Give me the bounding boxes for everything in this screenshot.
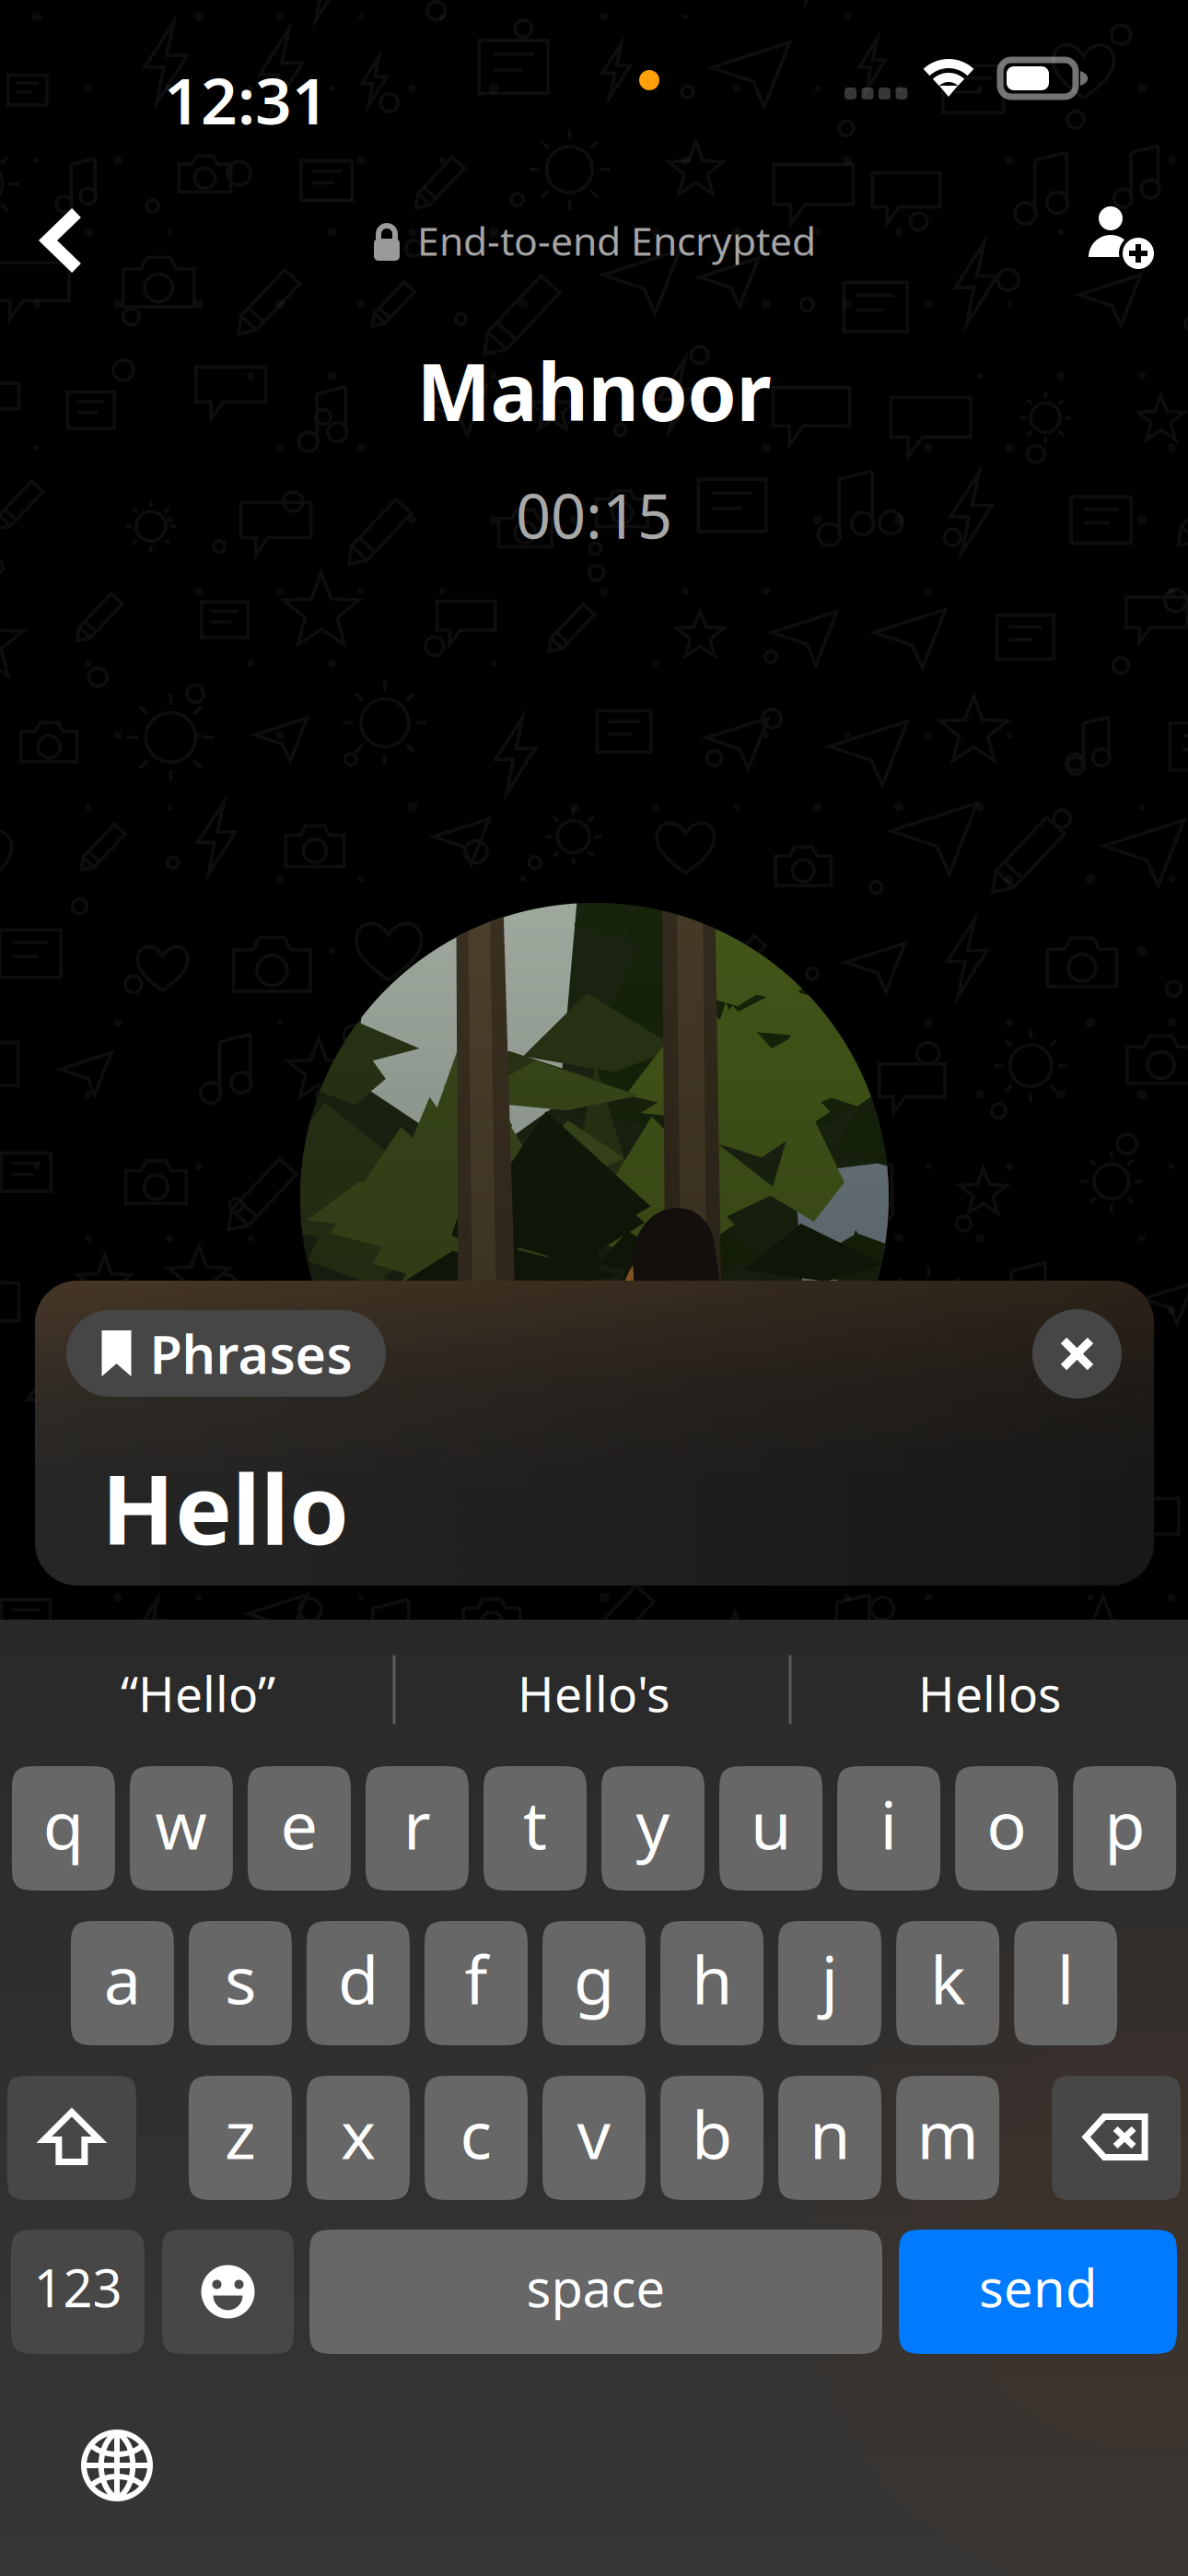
button[interactable]: “Hello” xyxy=(0,1620,396,1766)
button[interactable]: Hello's xyxy=(396,1620,792,1766)
staticText: h xyxy=(692,1934,732,2023)
button[interactable]: Close xyxy=(1032,1309,1122,1399)
staticText: x xyxy=(341,2089,376,2177)
button[interactable]: m xyxy=(896,2076,999,2200)
button[interactable]: z xyxy=(189,2076,292,2200)
staticText: m xyxy=(917,2089,979,2177)
button[interactable]: d xyxy=(307,1921,410,2045)
button[interactable]: k xyxy=(896,1921,999,2045)
staticText: e xyxy=(280,1780,318,1868)
staticText: b xyxy=(692,2089,732,2177)
button[interactable]: t xyxy=(483,1766,587,1891)
button[interactable]: r xyxy=(366,1766,469,1891)
button[interactable]: p xyxy=(1073,1766,1176,1891)
staticText: Mahnoor xyxy=(417,338,771,443)
button[interactable]: o xyxy=(955,1766,1058,1891)
button[interactable]: g xyxy=(542,1921,646,2045)
button[interactable]: space xyxy=(309,2230,882,2354)
button[interactable]: w xyxy=(130,1766,233,1891)
button[interactable]: l xyxy=(1014,1921,1117,2045)
staticText: Phrases xyxy=(150,1318,352,1388)
staticText: z xyxy=(225,2089,256,2177)
staticText: i xyxy=(880,1780,898,1868)
button[interactable]: Hellos xyxy=(792,1620,1188,1766)
button[interactable]: h xyxy=(660,1921,763,2045)
staticText: l xyxy=(1057,1934,1074,2023)
staticText: 00:15 xyxy=(516,474,672,556)
staticText: w xyxy=(155,1780,208,1868)
staticText: q xyxy=(43,1780,84,1868)
staticText: p xyxy=(1104,1780,1145,1868)
staticText: v xyxy=(577,2089,611,2177)
staticText: send xyxy=(979,2253,1097,2321)
staticText: d xyxy=(338,1934,378,2023)
button[interactable]: n xyxy=(778,2076,881,2200)
staticText: r xyxy=(403,1780,431,1868)
button[interactable]: Emoji xyxy=(162,2230,294,2354)
button[interactable]: f xyxy=(425,1921,528,2045)
staticText: s xyxy=(225,1934,256,2023)
button[interactable]: e xyxy=(248,1766,351,1891)
button[interactable]: Delete xyxy=(1052,2076,1181,2200)
button[interactable]: Phrases xyxy=(66,1310,386,1397)
staticText: “Hello” xyxy=(121,1660,275,1726)
staticText: 12:31 xyxy=(164,57,329,142)
staticText: u xyxy=(751,1780,791,1868)
button[interactable]: Add participant xyxy=(1068,190,1179,291)
staticText: 123 xyxy=(34,2253,122,2321)
staticText: f xyxy=(465,1934,488,2023)
button[interactable]: send xyxy=(899,2230,1177,2354)
button[interactable]: j xyxy=(778,1921,881,2045)
button[interactable]: v xyxy=(542,2076,646,2200)
staticText: space xyxy=(526,2253,665,2321)
staticText: Hello's xyxy=(518,1660,670,1726)
button[interactable]: x xyxy=(307,2076,410,2200)
staticText: End-to-end Encrypted xyxy=(417,214,816,267)
button[interactable]: u xyxy=(719,1766,822,1891)
button[interactable]: c xyxy=(425,2076,528,2200)
button[interactable]: i xyxy=(837,1766,940,1891)
button[interactable]: 123 xyxy=(11,2230,145,2354)
staticText: o xyxy=(986,1780,1027,1868)
staticText: g xyxy=(574,1934,614,2023)
staticText: a xyxy=(104,1934,141,2023)
button[interactable]: Back xyxy=(7,190,118,291)
staticText: n xyxy=(810,2089,850,2177)
staticText: Hellos xyxy=(918,1660,1062,1726)
staticText: t xyxy=(523,1780,547,1868)
button[interactable]: b xyxy=(660,2076,763,2200)
staticText: k xyxy=(930,1934,965,2023)
staticText: j xyxy=(821,1934,839,2023)
button[interactable]: Shift xyxy=(7,2076,136,2200)
staticText: Hello xyxy=(101,1444,349,1571)
staticText: y xyxy=(636,1780,670,1868)
button[interactable]: a xyxy=(71,1921,174,2045)
button[interactable]: Change keyboard xyxy=(62,2415,172,2516)
staticText: c xyxy=(460,2089,492,2177)
button[interactable]: q xyxy=(12,1766,115,1891)
button[interactable]: y xyxy=(601,1766,705,1891)
button[interactable]: s xyxy=(189,1921,292,2045)
